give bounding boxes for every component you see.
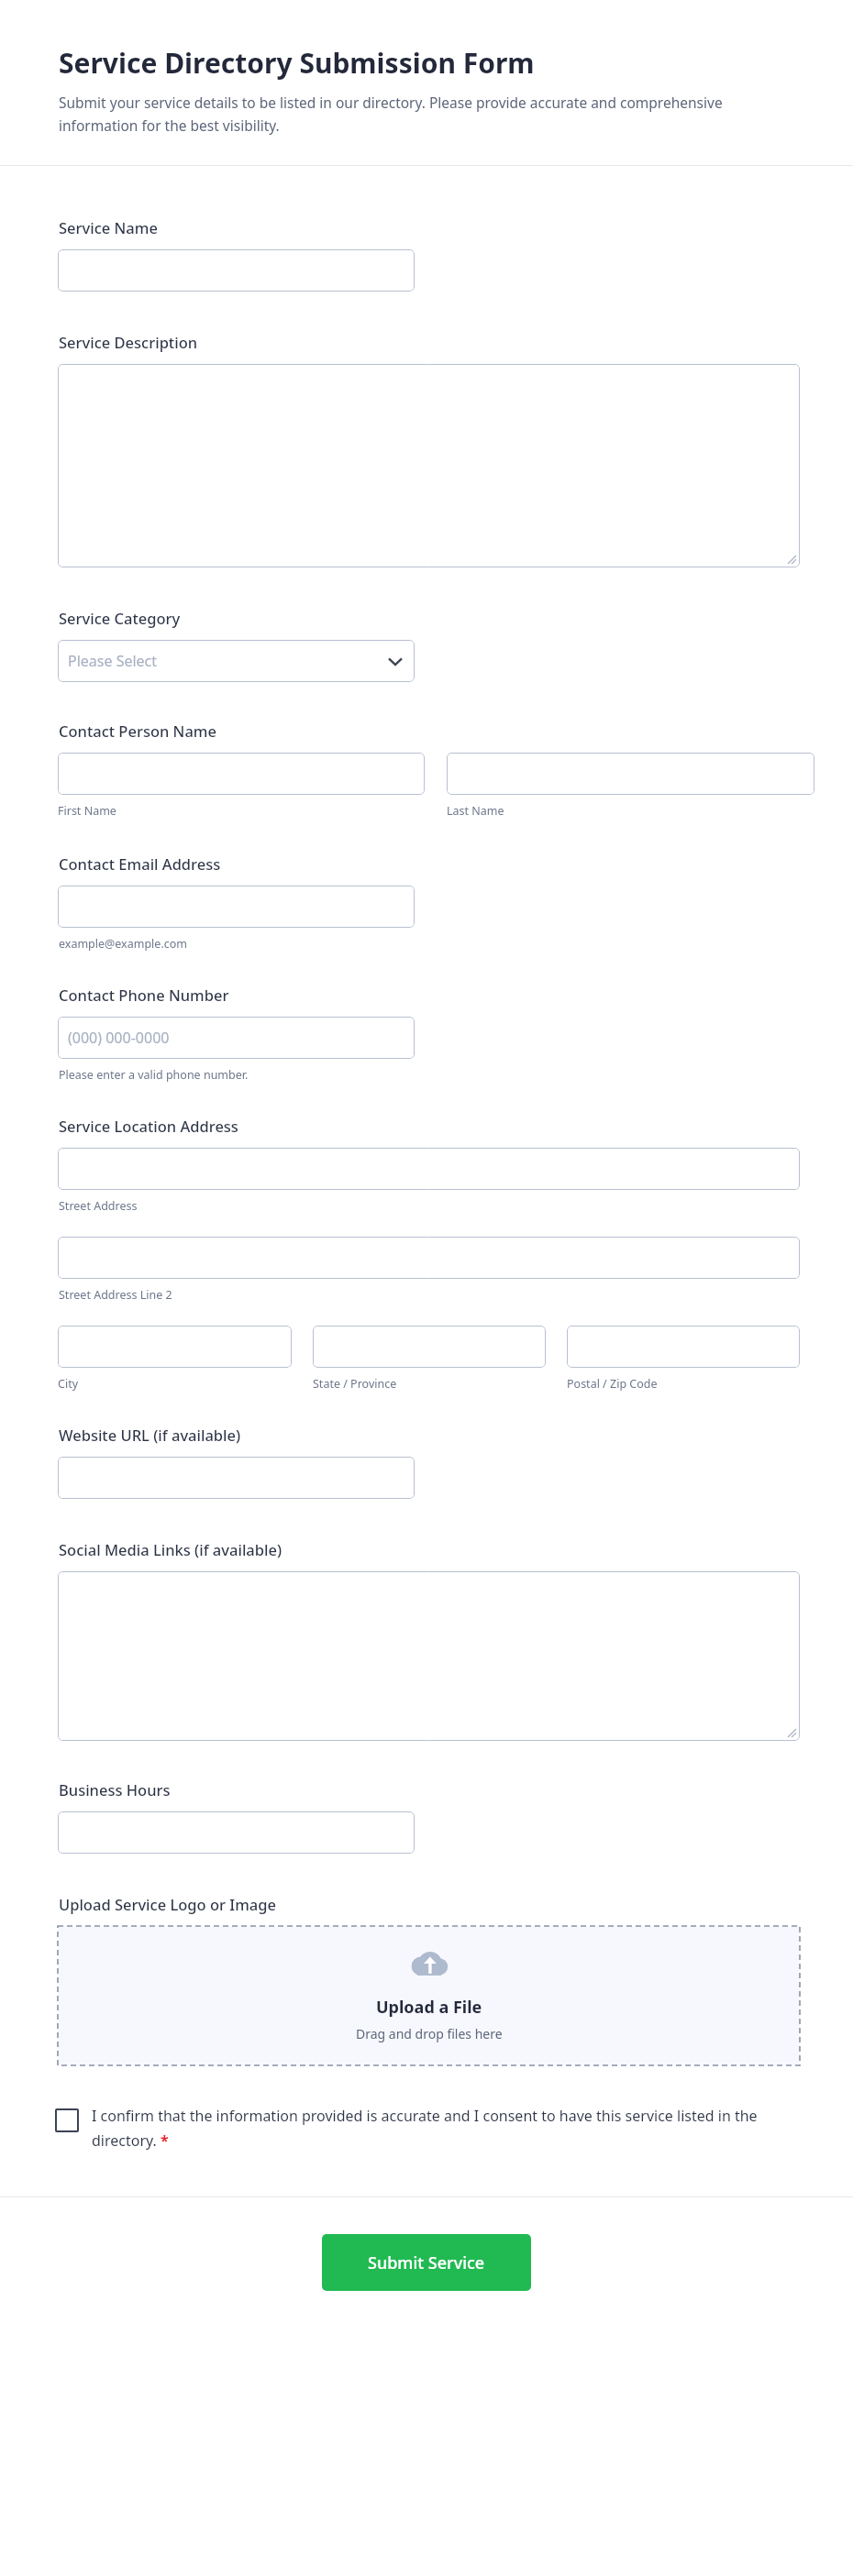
- button[interactable]: [313, 1326, 546, 1368]
- button[interactable]: [58, 1457, 415, 1499]
- button[interactable]: Please Select: [58, 640, 415, 682]
- staticText: Service Directory Submission Form: [59, 44, 535, 82]
- staticText: Postal / Zip Code: [567, 1376, 658, 1392]
- staticText: Please enter a valid phone number.: [59, 1067, 249, 1083]
- staticText: Contact Phone Number: [59, 985, 229, 1005]
- button[interactable]: [58, 886, 415, 928]
- staticText: Service Name: [59, 217, 158, 237]
- staticText: Service Description: [59, 332, 198, 352]
- button[interactable]: [58, 1811, 415, 1854]
- staticText: Drag and drop files here: [356, 2025, 503, 2042]
- staticText: Street Address: [59, 1198, 138, 1214]
- staticText: Contact Email Address: [59, 853, 221, 874]
- button[interactable]: Submit Service: [322, 2234, 531, 2291]
- button[interactable]: [58, 1148, 800, 1190]
- button[interactable]: [58, 249, 415, 292]
- staticText: Upload a File: [376, 1996, 482, 2019]
- staticText: Service Category: [59, 608, 181, 628]
- button[interactable]: [58, 1326, 292, 1368]
- staticText: Last Name: [447, 803, 504, 819]
- button[interactable]: [58, 1571, 800, 1741]
- staticText: First Name: [58, 803, 116, 819]
- staticText: Business Hours: [59, 1779, 171, 1800]
- staticText: (000) 000-0000: [68, 1028, 170, 1048]
- button[interactable]: [58, 364, 800, 567]
- staticText: Submit your service details to be listed…: [59, 93, 800, 136]
- staticText: City: [58, 1376, 79, 1392]
- staticText: State / Province: [313, 1376, 397, 1392]
- staticText: Website URL (if available): [59, 1425, 241, 1445]
- staticText: Contact Person Name: [59, 721, 216, 741]
- button[interactable]: [447, 753, 814, 795]
- button[interactable]: [567, 1326, 800, 1368]
- staticText: Please Select: [68, 651, 158, 671]
- staticText: I confirm that the information provided …: [92, 2106, 789, 2151]
- staticText: Submit Service: [368, 2251, 485, 2274]
- staticText: example@example.com: [59, 936, 187, 952]
- button[interactable]: Upload a File: [58, 1926, 800, 2065]
- button[interactable]: (000) 000-0000: [58, 1017, 415, 1059]
- button[interactable]: I confirm that the information provided …: [55, 2106, 789, 2151]
- staticText: Street Address Line 2: [59, 1287, 172, 1303]
- staticText: Service Location Address: [59, 1116, 238, 1136]
- staticText: Upload Service Logo or Image: [59, 1894, 276, 1914]
- button[interactable]: [58, 753, 425, 795]
- button[interactable]: [58, 1237, 800, 1279]
- staticText: Social Media Links (if available): [59, 1539, 282, 1559]
